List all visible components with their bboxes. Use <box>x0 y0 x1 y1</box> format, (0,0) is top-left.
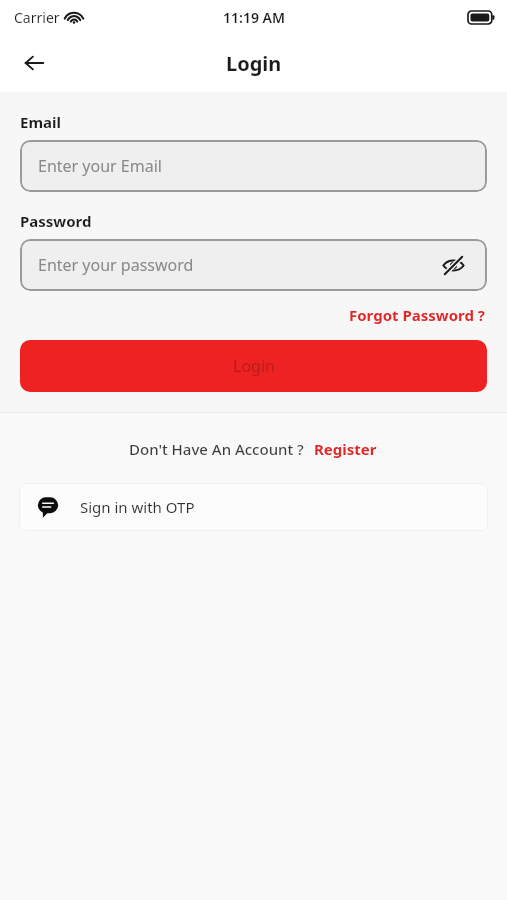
button[interactable]: Enter your Email <box>20 140 487 192</box>
staticText: Sign in with OTP <box>80 497 195 517</box>
staticText: Password <box>20 211 92 231</box>
button[interactable]: Login <box>20 340 487 392</box>
staticText: Carrier <box>14 8 60 27</box>
staticText: Login <box>233 355 275 377</box>
button[interactable]: Back <box>12 41 56 85</box>
staticText: Email <box>20 112 61 132</box>
staticText: Don't Have An Account ? <box>129 439 304 459</box>
button[interactable]: Enter your password <box>20 239 487 291</box>
button[interactable]: Forgot Password ? <box>347 303 487 327</box>
button[interactable]: Register <box>312 437 379 461</box>
button[interactable]: Sign in with OTP <box>19 483 488 531</box>
staticText: 11:19 AM <box>223 8 285 27</box>
staticText: Enter your password <box>38 254 194 276</box>
button[interactable]: Show password <box>437 249 469 281</box>
staticText: Enter your Email <box>38 155 162 177</box>
staticText: Login <box>226 50 282 77</box>
staticText: Forgot Password ? <box>349 305 485 325</box>
staticText: Register <box>314 439 377 459</box>
